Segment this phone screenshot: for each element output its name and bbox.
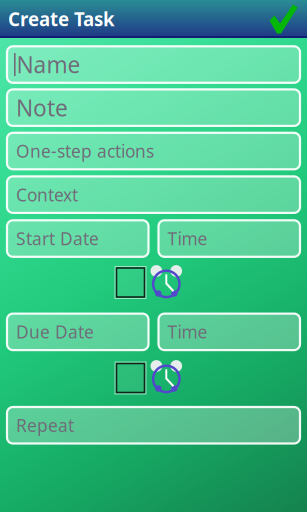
button[interactable]: Start date alarm <box>150 264 182 300</box>
button[interactable]: Start Date <box>7 220 148 257</box>
staticText: Context <box>16 183 78 206</box>
button[interactable]: Time <box>158 314 300 350</box>
staticText: Name <box>17 49 81 80</box>
staticText: Start Date <box>16 227 99 250</box>
button[interactable]: Save task <box>269 4 298 34</box>
button[interactable]: Due Date <box>7 314 148 350</box>
staticText: One-step actions <box>16 139 154 162</box>
staticText: Due Date <box>16 320 94 343</box>
staticText: Time <box>167 320 207 343</box>
staticText: Create Task <box>8 7 115 31</box>
button[interactable]: Time <box>158 220 300 257</box>
button[interactable]: Note <box>7 89 300 126</box>
button[interactable]: Enable reminder <box>116 268 144 297</box>
button[interactable]: Due date alarm <box>150 359 182 395</box>
button[interactable]: Enable reminder <box>116 363 144 392</box>
button[interactable]: Context <box>7 176 300 213</box>
button[interactable]: Name <box>7 46 300 83</box>
staticText: Note <box>16 93 68 123</box>
staticText: Repeat <box>16 414 74 437</box>
button[interactable]: One-step actions <box>7 133 300 169</box>
button[interactable]: Repeat <box>7 407 300 443</box>
staticText: Time <box>167 227 207 250</box>
